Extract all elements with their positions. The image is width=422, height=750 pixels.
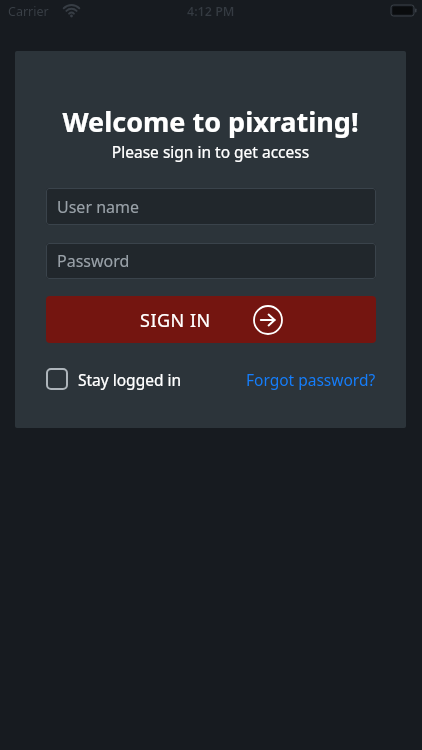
staticText: Forgot password?	[246, 369, 376, 390]
staticText: Password	[57, 250, 130, 272]
staticText: Welcome to pixrating!	[15, 103, 406, 140]
staticText: Please sign in to get access	[15, 141, 406, 162]
staticText: User name	[57, 196, 140, 218]
staticText: Carrier	[8, 3, 49, 20]
staticText: SIGN IN	[140, 308, 211, 333]
staticText: 4:12 PM	[187, 3, 235, 20]
staticText: Stay logged in	[78, 369, 182, 390]
